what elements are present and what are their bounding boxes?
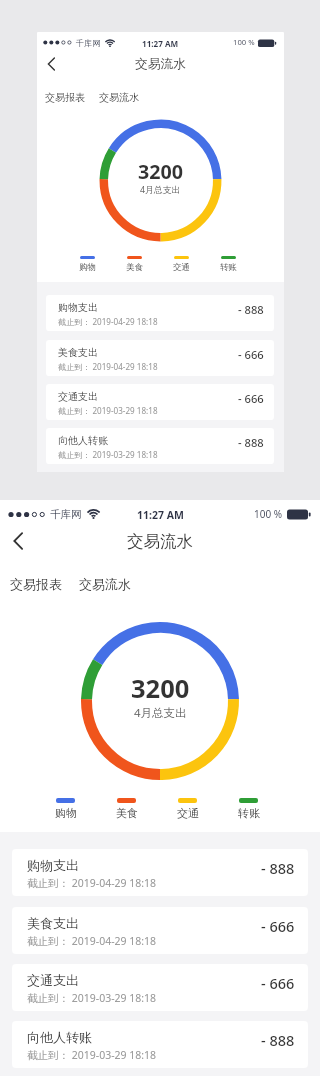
staticText: - 888: [261, 1030, 295, 1050]
staticText: 美食: [116, 806, 138, 820]
button[interactable]: 向他人转账: [12, 1021, 308, 1068]
staticText: 美食支出: [58, 346, 99, 359]
staticText: 购物支出: [27, 857, 79, 873]
staticText: 11:27 AM: [142, 38, 179, 49]
button[interactable]: 美食支出: [12, 907, 308, 954]
staticText: 千库网: [50, 508, 82, 521]
staticText: 向他人转账: [27, 1029, 92, 1045]
staticText: 交易报表: [10, 576, 62, 592]
staticText: 交通支出: [58, 390, 99, 403]
staticText: 向他人转账: [58, 434, 109, 447]
staticText: 截止到： 2019-03-29 18:18: [27, 1048, 157, 1062]
staticText: 交易流水: [135, 56, 186, 72]
button[interactable]: 交通支出: [12, 964, 308, 1011]
button[interactable]: 交通支出: [46, 384, 274, 420]
button[interactable]: 购物支出: [46, 295, 274, 331]
staticText: - 666: [261, 916, 295, 936]
button[interactable]: 购物支出: [12, 849, 308, 896]
staticText: - 666: [261, 973, 295, 993]
staticText: 截止到： 2019-04-29 18:18: [58, 361, 158, 372]
staticText: - 888: [261, 858, 295, 878]
staticText: 截止到： 2019-04-29 18:18: [27, 876, 157, 890]
staticText: 购物: [55, 806, 77, 820]
staticText: 美食支出: [27, 915, 79, 931]
staticText: 千库网: [76, 38, 101, 48]
staticText: 交通: [173, 262, 190, 273]
staticText: 交易流水: [79, 576, 131, 592]
staticText: 3200: [138, 158, 184, 185]
staticText: 交通支出: [27, 972, 79, 988]
staticText: 交易流水: [99, 91, 140, 104]
staticText: - 666: [238, 391, 264, 406]
staticText: 美食: [126, 262, 143, 273]
staticText: 转账: [238, 806, 260, 820]
staticText: 11:27 AM: [137, 508, 184, 522]
staticText: 截止到： 2019-04-29 18:18: [58, 316, 158, 327]
button[interactable]: [6, 528, 32, 554]
staticText: 100 %: [233, 37, 255, 48]
staticText: 购物支出: [58, 301, 99, 314]
button[interactable]: 交易报表: [45, 91, 86, 104]
staticText: 转账: [220, 262, 237, 273]
staticText: 交易报表: [45, 91, 86, 104]
staticText: 100 %: [254, 507, 283, 521]
staticText: 交易流水: [127, 531, 193, 552]
button[interactable]: 交易流水: [79, 576, 131, 592]
staticText: 购物: [79, 262, 96, 273]
staticText: - 666: [238, 347, 264, 362]
staticText: 截止到： 2019-03-29 18:18: [58, 405, 158, 416]
staticText: - 888: [238, 435, 264, 450]
staticText: 交通: [177, 806, 199, 820]
staticText: 3200: [131, 671, 190, 706]
staticText: 4月总支出: [140, 184, 181, 196]
button[interactable]: 交易流水: [99, 91, 140, 104]
staticText: 4月总支出: [134, 705, 187, 721]
staticText: 截止到： 2019-03-29 18:18: [58, 449, 158, 460]
button[interactable]: 交易报表: [10, 576, 62, 592]
staticText: - 888: [238, 302, 264, 317]
button[interactable]: 美食支出: [46, 340, 274, 376]
staticText: 截止到： 2019-03-29 18:18: [27, 991, 157, 1005]
button[interactable]: 向他人转账: [46, 428, 274, 464]
staticText: 截止到： 2019-04-29 18:18: [27, 934, 157, 948]
button[interactable]: [42, 54, 62, 74]
